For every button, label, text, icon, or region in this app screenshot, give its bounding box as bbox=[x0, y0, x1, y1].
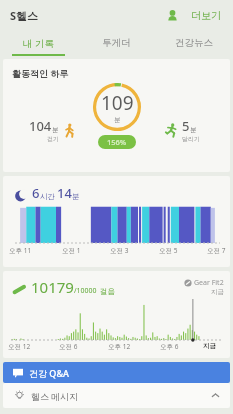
staticText: 투게더 bbox=[102, 37, 131, 49]
button[interactable]: 더보기 bbox=[187, 5, 225, 26]
staticText: Gear Fit2 bbox=[194, 278, 224, 288]
staticText: 104 bbox=[29, 117, 52, 135]
staticText: 더보기 bbox=[191, 9, 221, 22]
button[interactable]: Profile bbox=[161, 4, 183, 26]
staticText: 시간 bbox=[40, 192, 55, 201]
staticText: 지금 bbox=[203, 342, 216, 350]
staticText: 달리기 bbox=[182, 135, 200, 143]
staticText: 14 bbox=[57, 184, 72, 202]
staticText: 분 bbox=[114, 116, 121, 124]
button[interactable]: 건강 Q&A bbox=[3, 362, 230, 383]
staticText: 109 bbox=[101, 90, 134, 116]
staticText: 오전 6 bbox=[59, 342, 78, 351]
staticText: 오전 3 bbox=[110, 246, 129, 255]
staticText: 오후 12 bbox=[108, 342, 131, 351]
staticText: 내 기록 bbox=[23, 37, 54, 50]
staticText: 활동적인 하루 bbox=[12, 67, 69, 79]
staticText: 오전 5 bbox=[159, 246, 178, 255]
staticText: 6 bbox=[32, 184, 40, 202]
staticText: 오후 11 bbox=[9, 246, 32, 255]
staticText: 5 bbox=[182, 117, 190, 135]
staticText: 헬스 메시지 bbox=[31, 390, 79, 402]
staticText: 건강뉴스 bbox=[175, 37, 213, 49]
staticText: 분 bbox=[52, 126, 59, 134]
staticText: 156% bbox=[107, 137, 127, 147]
button[interactable]: 내 기록 bbox=[0, 30, 77, 56]
staticText: 오전 7 bbox=[207, 246, 226, 255]
staticText: 오전 12 bbox=[8, 342, 31, 351]
button[interactable]: 10179 bbox=[3, 271, 230, 358]
button[interactable]: 투게더 bbox=[77, 30, 155, 56]
staticText: 분 bbox=[190, 126, 197, 134]
staticText: 건강 Q&A bbox=[29, 367, 69, 379]
staticText: 분 bbox=[72, 192, 80, 201]
staticText: 오후 6 bbox=[160, 342, 179, 351]
button[interactable]: 6 bbox=[3, 176, 230, 267]
staticText: 걷기 bbox=[47, 135, 59, 143]
staticText: S헬스 bbox=[10, 8, 39, 23]
staticText: 지금 bbox=[211, 288, 224, 296]
staticText: 오전 1 bbox=[62, 246, 81, 255]
button[interactable]: 헬스 메시지 bbox=[3, 383, 230, 408]
staticText: 걸음 bbox=[100, 287, 115, 296]
staticText: /10000 bbox=[74, 286, 97, 296]
staticText: 10179 bbox=[31, 277, 74, 297]
button[interactable]: 건강뉴스 bbox=[155, 30, 233, 56]
button[interactable]: 활동적인 하루 bbox=[3, 59, 230, 172]
